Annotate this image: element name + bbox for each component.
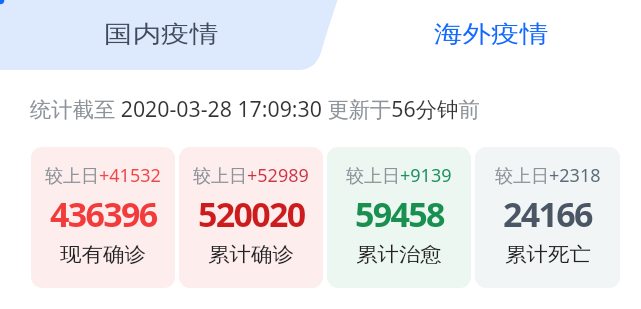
staticText: 436396: [50, 191, 157, 237]
staticText: 统计截至 2020-03-28 17:09:30 更新于56分钟前: [30, 94, 480, 123]
staticText: 较上日+52989: [193, 163, 309, 188]
staticText: 现有确诊: [60, 242, 146, 267]
button[interactable]: 较上日+41532: [31, 147, 175, 288]
staticText: 较上日+2318: [495, 163, 601, 188]
staticText: 海外疫情: [434, 19, 548, 49]
button[interactable]: 较上日+9139: [327, 147, 471, 288]
staticText: 较上日+9139: [346, 163, 452, 188]
button[interactable]: 国内疫情: [0, 0, 321, 70]
staticText: 累计死亡: [505, 242, 591, 267]
staticText: 59458: [355, 191, 444, 237]
button[interactable]: 海外疫情: [341, 0, 641, 70]
staticText: 24166: [503, 191, 592, 237]
staticText: 累计治愈: [356, 242, 442, 267]
staticText: 国内疫情: [104, 19, 218, 49]
button[interactable]: 统计截至 2020-03-28 17:09:30 更新于56分钟前: [30, 94, 480, 123]
staticText: 累计确诊: [208, 242, 294, 267]
staticText: 较上日+41532: [45, 163, 161, 188]
button[interactable]: 较上日+52989: [179, 147, 323, 288]
staticText: 520020: [198, 191, 305, 237]
button[interactable]: 较上日+2318: [475, 147, 620, 288]
